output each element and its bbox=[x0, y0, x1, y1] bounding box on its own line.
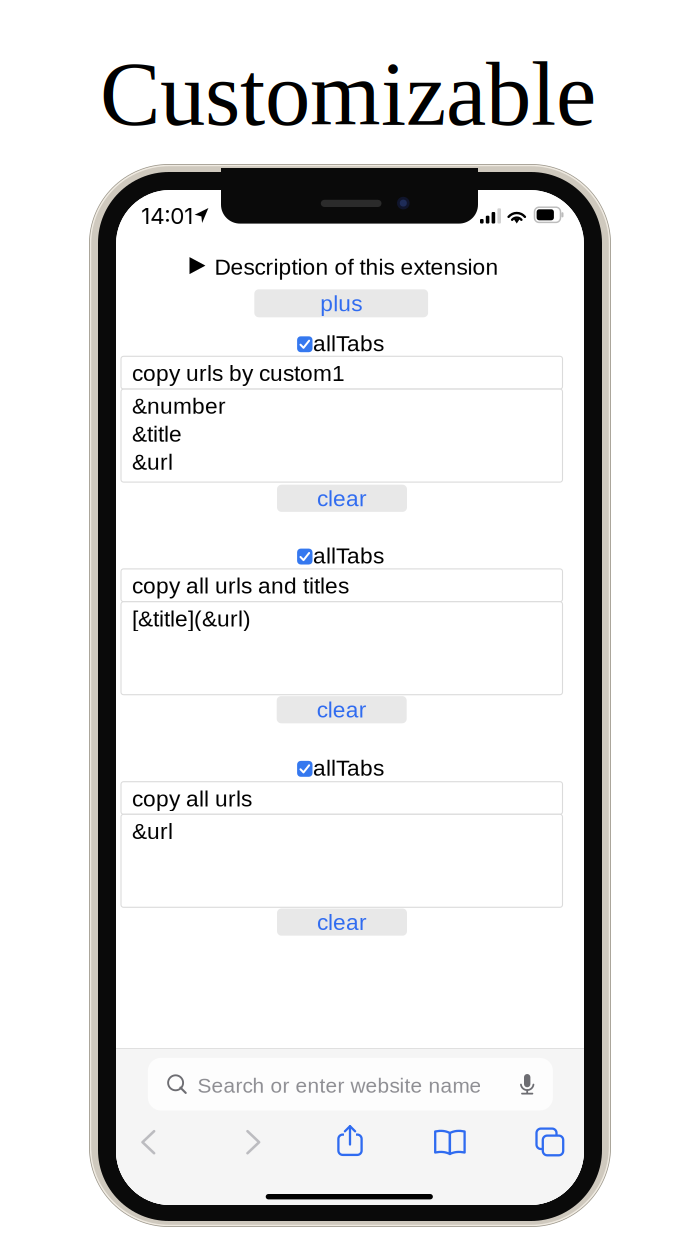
staticText: &url bbox=[132, 449, 173, 475]
button[interactable]: allTabs bbox=[116, 190, 584, 212]
staticText: Description of this extension bbox=[215, 254, 499, 280]
button[interactable]: clear bbox=[277, 908, 407, 936]
button[interactable]: allTabs bbox=[116, 190, 584, 212]
staticText: allTabs bbox=[313, 331, 384, 356]
staticText: plus bbox=[320, 291, 362, 316]
staticText: clear bbox=[317, 697, 367, 722]
staticText: [&title](&url) bbox=[132, 606, 251, 631]
staticText: Search or enter website name bbox=[197, 1074, 481, 1097]
staticText: copy urls by custom1 bbox=[132, 360, 345, 386]
staticText: clear bbox=[317, 486, 367, 511]
button[interactable]: Tabs bbox=[515, 1115, 579, 1171]
button[interactable]: plus bbox=[254, 289, 428, 317]
staticText: allTabs bbox=[313, 755, 384, 781]
button[interactable]: clear bbox=[277, 485, 407, 512]
button[interactable]: allTabs bbox=[116, 190, 584, 212]
staticText: clear bbox=[317, 909, 367, 935]
button[interactable]: Forward bbox=[221, 1115, 285, 1171]
staticText: 14:01 bbox=[141, 202, 193, 229]
staticText: &number bbox=[132, 393, 226, 419]
staticText: &title bbox=[132, 421, 182, 447]
button[interactable]: Back bbox=[116, 1115, 180, 1171]
staticText: allTabs bbox=[313, 543, 384, 568]
button[interactable]: Share bbox=[318, 1115, 382, 1171]
button[interactable]: Description of this extension bbox=[181, 247, 521, 281]
staticText: Customizable bbox=[100, 44, 596, 144]
button[interactable]: Bookmarks bbox=[419, 1115, 483, 1171]
button[interactable]: Search or enter website name bbox=[148, 1058, 553, 1110]
staticText: copy all urls bbox=[132, 786, 252, 811]
staticText: &url bbox=[132, 818, 173, 844]
button[interactable]: clear bbox=[277, 696, 407, 723]
staticText: copy all urls and titles bbox=[132, 573, 349, 598]
